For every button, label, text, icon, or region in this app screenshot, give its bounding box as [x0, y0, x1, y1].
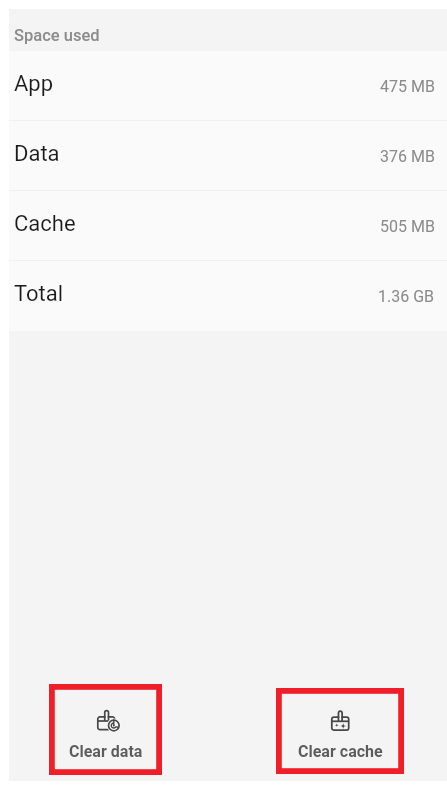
staticText: 505 MB — [380, 217, 435, 236]
staticText: Clear data — [69, 742, 143, 761]
button[interactable]: Clear data — [49, 684, 162, 775]
button[interactable]: Total — [9, 261, 447, 331]
staticText: 475 MB — [380, 77, 435, 96]
staticText: 1.36 GB — [378, 287, 435, 306]
staticText: Data — [14, 141, 60, 167]
staticText: Space used — [14, 26, 100, 45]
button[interactable]: Clear cache — [276, 688, 404, 774]
staticText: 376 MB — [380, 147, 435, 166]
button[interactable]: Data — [9, 121, 447, 191]
button[interactable]: App — [9, 51, 447, 121]
staticText: Total — [14, 281, 64, 307]
button[interactable]: Cache — [9, 191, 447, 261]
staticText: Clear cache — [298, 742, 383, 761]
staticText: App — [14, 71, 54, 97]
staticText: Cache — [14, 211, 76, 237]
